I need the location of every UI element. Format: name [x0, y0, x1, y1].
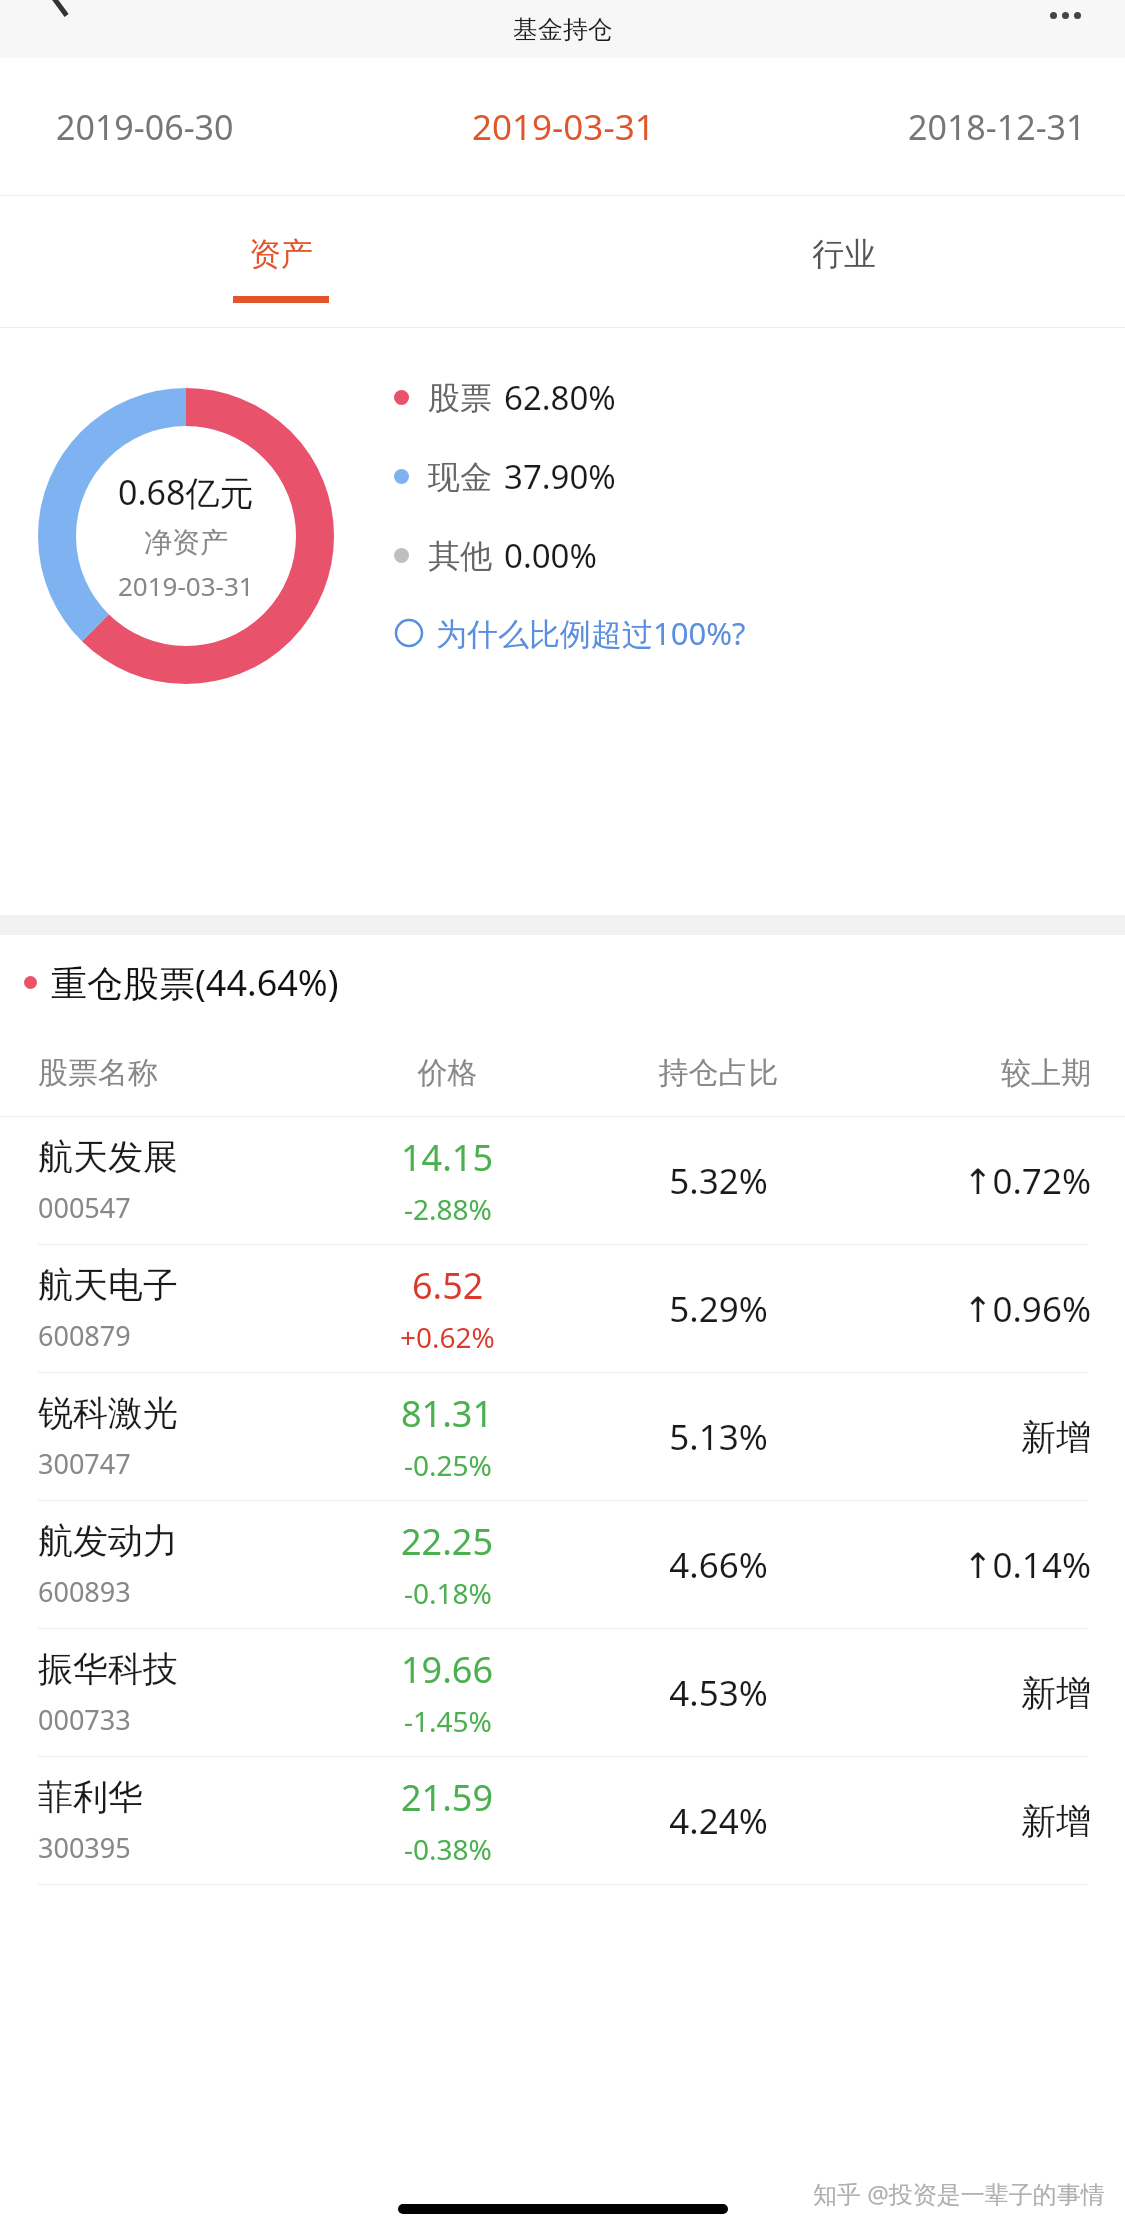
- staticText: ↑0.96%: [854, 1285, 1091, 1333]
- button[interactable]: 行业: [562, 196, 1125, 328]
- staticText: 000733: [38, 1701, 131, 1738]
- staticText: 600893: [38, 1573, 131, 1610]
- staticText: 4.24%: [583, 1797, 854, 1845]
- staticText: -0.18%: [404, 1574, 492, 1612]
- staticText: 2018-12-31: [908, 104, 1086, 150]
- staticText: 0.68亿元: [118, 469, 254, 515]
- staticText: 19.66: [401, 1645, 494, 1694]
- staticText: 新增: [854, 1415, 1091, 1459]
- staticText: 现金: [428, 457, 492, 497]
- staticText: 锐科激光: [38, 1391, 178, 1435]
- staticText: 股票: [428, 378, 492, 418]
- button[interactable]: 菲利华: [0, 1757, 1125, 1885]
- staticText: 5.32%: [583, 1157, 854, 1205]
- button[interactable]: More options: [1005, 0, 1125, 58]
- staticText: 新增: [854, 1799, 1091, 1843]
- staticText: 5.29%: [583, 1285, 854, 1333]
- staticText: 较上期: [854, 1054, 1091, 1092]
- staticText: 6.52: [412, 1261, 484, 1310]
- staticText: 5.13%: [583, 1413, 854, 1461]
- staticText: 资产: [249, 234, 313, 274]
- staticText: 37.90%: [504, 454, 616, 499]
- staticText: 14.15: [401, 1133, 494, 1182]
- button[interactable]: 航发动力: [0, 1501, 1125, 1629]
- staticText: +0.62%: [400, 1318, 495, 1356]
- staticText: 航天电子: [38, 1263, 178, 1307]
- staticText: 0.00%: [504, 533, 597, 578]
- staticText: 300395: [38, 1829, 131, 1866]
- staticText: 81.31: [401, 1389, 494, 1438]
- staticText: 行业: [812, 234, 876, 274]
- staticText: 22.25: [401, 1517, 494, 1566]
- staticText: -1.45%: [404, 1702, 492, 1740]
- staticText: -0.38%: [404, 1830, 492, 1868]
- staticText: 4.66%: [583, 1541, 854, 1589]
- button[interactable]: 2019-03-31: [398, 58, 728, 196]
- button[interactable]: 锐科激光: [0, 1373, 1125, 1501]
- staticText: 000547: [38, 1189, 131, 1226]
- staticText: 菲利华: [38, 1775, 143, 1819]
- staticText: 基金持仓: [513, 14, 613, 45]
- staticText: 2019-06-30: [56, 104, 234, 150]
- staticText: -0.25%: [404, 1446, 492, 1484]
- staticText: 重仓股票(44.64%): [51, 958, 339, 1007]
- staticText: 航发动力: [38, 1519, 178, 1563]
- staticText: 持仓占比: [583, 1054, 854, 1092]
- staticText: 为什么比例超过100%?: [436, 612, 746, 654]
- staticText: 股票名称: [38, 1054, 312, 1092]
- button[interactable]: 振华科技: [0, 1629, 1125, 1757]
- button[interactable]: 航天发展: [0, 1117, 1125, 1245]
- staticText: 4.53%: [583, 1669, 854, 1717]
- staticText: 其他: [428, 536, 492, 576]
- staticText: ↑0.72%: [854, 1157, 1091, 1205]
- staticText: 21.59: [401, 1773, 494, 1822]
- staticText: 振华科技: [38, 1647, 178, 1691]
- staticText: 2019-03-31: [472, 103, 655, 151]
- button[interactable]: Back: [0, 0, 120, 58]
- button[interactable]: 为什么比例超过100%?: [394, 612, 746, 654]
- button[interactable]: 2018-12-31: [847, 58, 1125, 196]
- staticText: 航天发展: [38, 1135, 178, 1179]
- staticText: 新增: [854, 1671, 1091, 1715]
- staticText: 62.80%: [504, 375, 616, 420]
- button[interactable]: 航天电子: [0, 1245, 1125, 1373]
- staticText: 2019-03-31: [118, 568, 254, 603]
- button[interactable]: 资产: [0, 196, 562, 328]
- staticText: 600879: [38, 1317, 131, 1354]
- staticText: 知乎 @投资是一辈子的事情: [813, 2177, 1105, 2210]
- button[interactable]: 2019-06-30: [0, 58, 295, 196]
- staticText: ↑0.14%: [854, 1541, 1091, 1589]
- staticText: 净资产: [144, 525, 228, 560]
- staticText: 300747: [38, 1445, 131, 1482]
- staticText: 价格: [312, 1054, 583, 1092]
- staticText: -2.88%: [404, 1190, 492, 1228]
